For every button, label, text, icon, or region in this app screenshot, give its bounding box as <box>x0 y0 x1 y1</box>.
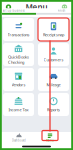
button[interactable]: Vendors <box>3 68 34 91</box>
button[interactable]: Dashboard <box>7 132 31 143</box>
staticText: Dashboard <box>12 139 26 142</box>
staticText: Receipt snap <box>43 32 64 37</box>
button[interactable]: Receipt snap <box>38 18 69 41</box>
button[interactable]: Customers <box>38 43 69 66</box>
staticText: Transactions <box>7 32 29 37</box>
button[interactable]: Profile <box>4 3 13 12</box>
staticText: Reports <box>47 107 60 112</box>
button[interactable]: Menu <box>38 132 62 143</box>
staticText: Vendors <box>11 82 25 87</box>
button[interactable]: Transactions <box>3 18 34 41</box>
button[interactable]: Income Tax <box>3 93 34 116</box>
staticText: Mileage <box>46 82 60 87</box>
staticText: Menu <box>46 139 54 142</box>
staticText: Customers <box>43 57 63 62</box>
staticText: Menu <box>25 2 47 12</box>
button[interactable]: QuickBooks Checking <box>3 43 34 66</box>
staticText: Income Tax <box>8 107 28 112</box>
button[interactable]: Reports <box>38 93 69 116</box>
staticText: Set up business <box>2 9 24 12</box>
button[interactable]: Set up business <box>0 8 73 16</box>
staticText: QuickBooks Checking <box>8 54 29 65</box>
button[interactable]: Help <box>60 3 69 12</box>
button[interactable]: Mileage <box>38 68 69 91</box>
staticText: Finish <box>57 9 65 12</box>
